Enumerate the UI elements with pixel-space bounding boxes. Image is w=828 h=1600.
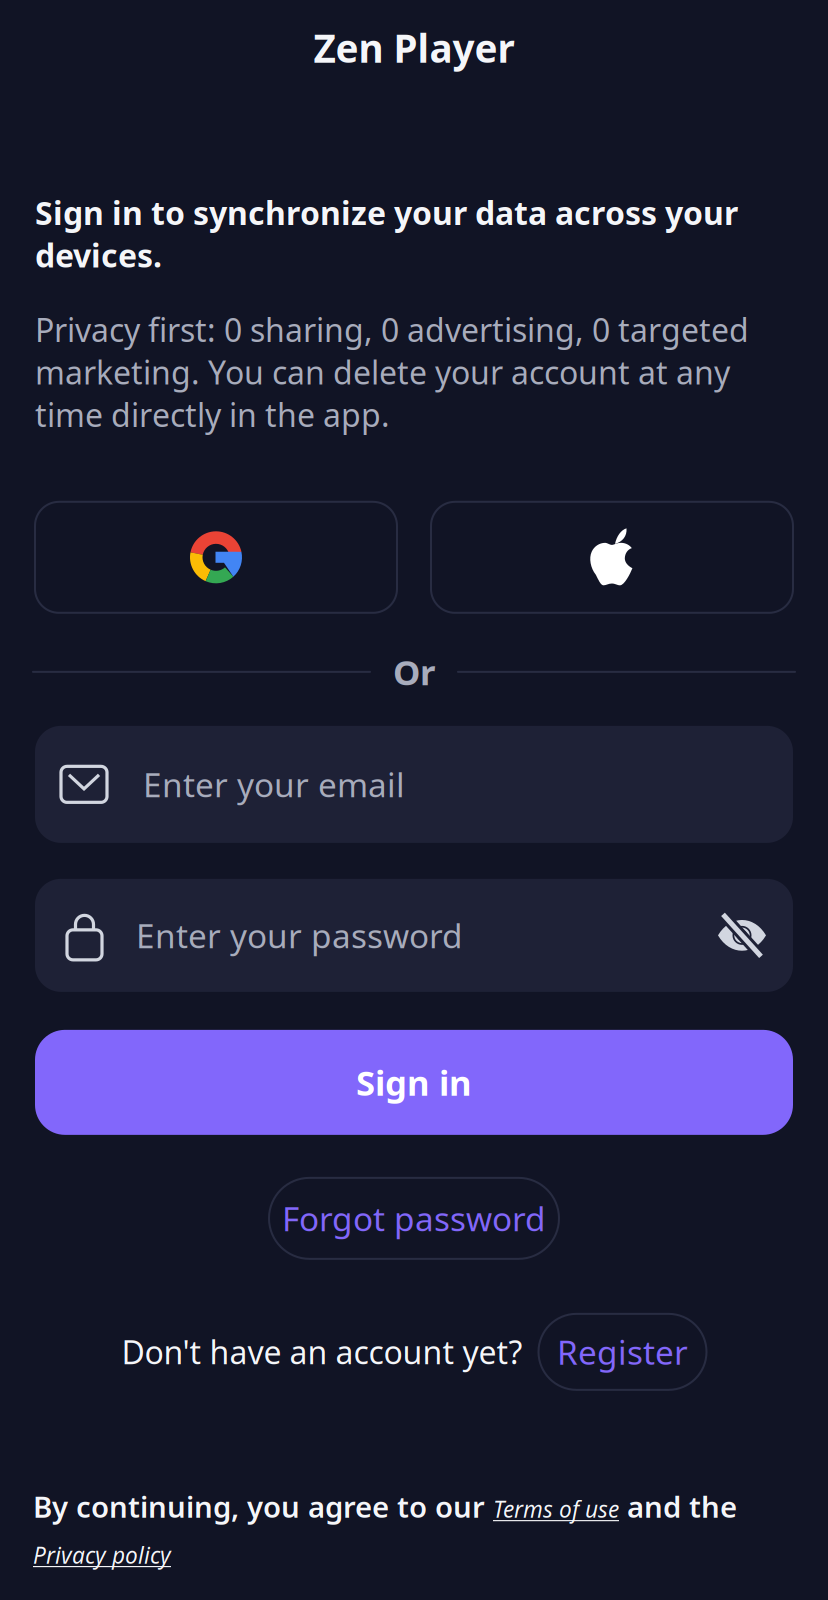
staticText: Don't have an account yet? (121, 1331, 522, 1373)
staticText: Sign in (356, 1059, 472, 1105)
button[interactable]: Sign in (35, 1030, 793, 1135)
button[interactable]: Register (538, 1314, 706, 1390)
staticText: Enter your password (136, 913, 463, 957)
button[interactable]: Sign in with Apple (431, 502, 793, 613)
staticText: Privacy first: 0 sharing, 0 advertising,… (35, 308, 749, 436)
staticText: By continuing, you agree to our Terms of… (33, 1487, 737, 1570)
staticText: Sign in to synchronize your data across … (35, 191, 738, 276)
button[interactable]: Show password (717, 916, 767, 954)
staticText: Or (393, 649, 435, 695)
staticText: Enter your email (143, 762, 405, 806)
staticText: Forgot password (282, 1196, 546, 1240)
staticText: Zen Player (313, 22, 514, 73)
button[interactable]: Forgot password (269, 1178, 559, 1259)
button[interactable]: Sign in with Google (35, 502, 397, 613)
staticText: Register (557, 1330, 688, 1374)
